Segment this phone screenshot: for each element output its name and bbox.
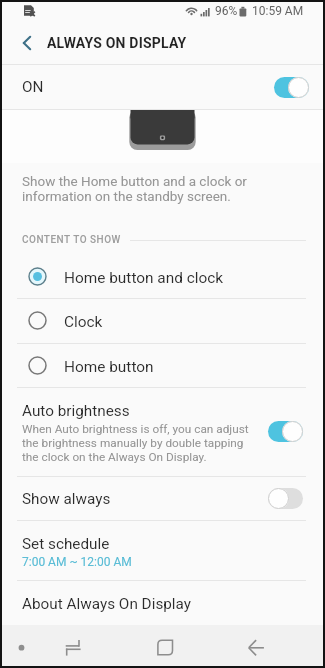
button[interactable]: Notifications <box>2 625 45 666</box>
staticText: When Auto brightness is off, you can adj… <box>22 422 249 464</box>
staticText: ALWAYS ON DISPLAY <box>47 35 187 51</box>
button[interactable]: Back <box>223 625 293 666</box>
button[interactable]: ON <box>2 65 323 109</box>
staticText: Home button and clock <box>64 269 224 287</box>
button[interactable]: Navigate up <box>10 27 42 59</box>
staticText: CONTENT TO SHOW <box>22 234 121 246</box>
button[interactable]: Recent apps <box>105 625 223 666</box>
button[interactable]: Home button <box>2 345 323 389</box>
staticText: Set schedule <box>22 535 110 553</box>
button[interactable]: Clock <box>2 300 323 344</box>
staticText: Auto brightness <box>22 402 130 420</box>
button[interactable]: Show always <box>2 478 323 520</box>
staticText: 10:59 AM <box>252 4 304 18</box>
button[interactable]: Auto brightness <box>2 389 323 476</box>
staticText: 7:00 AM ~ 12:00 AM <box>22 555 132 569</box>
staticText: About Always On Display <box>22 595 192 613</box>
button[interactable]: Split screen view <box>45 625 105 666</box>
button[interactable]: Set schedule <box>2 522 323 580</box>
staticText: Show always <box>22 490 111 508</box>
button[interactable]: About Always On Display <box>2 582 323 626</box>
staticText: ON <box>22 78 44 96</box>
staticText: 96% <box>215 4 238 18</box>
staticText: Home button <box>64 358 154 376</box>
staticText: Clock <box>64 313 103 331</box>
button[interactable]: Home button and clock <box>2 256 323 300</box>
staticText: Show the Home button and a clock or info… <box>22 173 247 204</box>
